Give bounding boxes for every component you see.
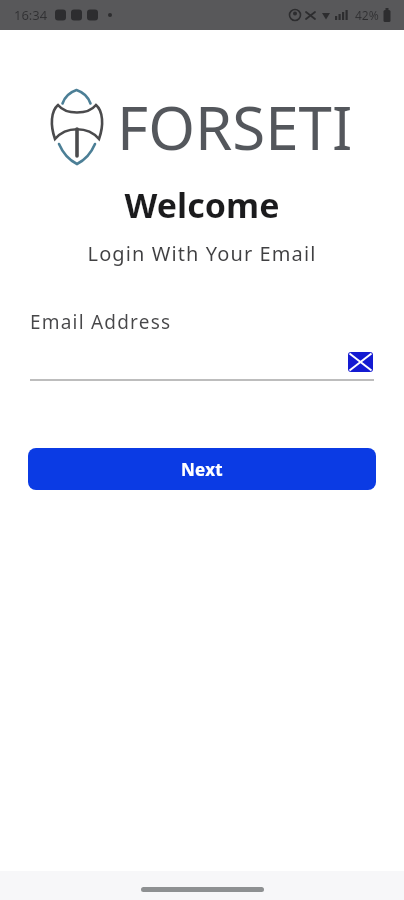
staticText: Login With Your Email [0, 240, 404, 267]
staticText: Email Address [30, 309, 172, 335]
staticText: FORSETI [117, 86, 353, 168]
button[interactable]: Next [28, 448, 376, 490]
button[interactable] [0, 352, 404, 372]
staticText: Welcome [0, 182, 404, 228]
staticText: 16:34 [14, 6, 48, 24]
staticText: Next [181, 458, 224, 481]
staticText: 42% [355, 7, 379, 23]
